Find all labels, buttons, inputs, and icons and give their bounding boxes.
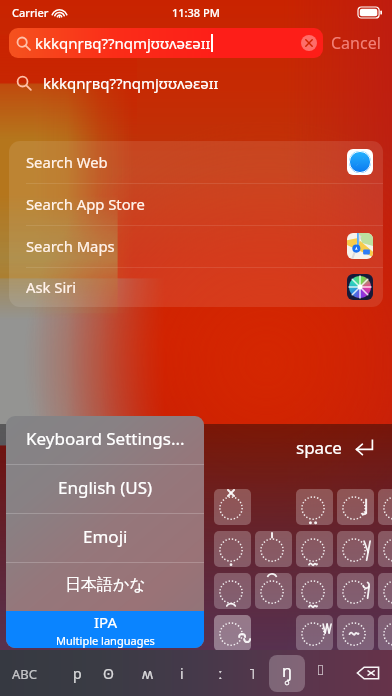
button[interactable]: Diacritic key [378, 615, 392, 651]
staticText: Carrier [12, 5, 49, 20]
button[interactable]: Return [354, 437, 374, 457]
staticText: Ask Siri [26, 277, 77, 297]
staticText: ŋ [282, 660, 292, 682]
staticText: ˥ [249, 664, 255, 683]
button[interactable]: ˥ [246, 661, 258, 686]
button[interactable]: Diacritic key [337, 531, 374, 567]
button[interactable]: Diacritic key [296, 573, 333, 609]
staticText: kkkqnɼвq??nqmјʊʊʌəɛəɪɪ [43, 73, 219, 93]
staticText: Keyboard Settings... [26, 427, 185, 450]
button[interactable]: Emoji [6, 514, 204, 562]
button[interactable]: Diacritic key [255, 531, 292, 567]
button[interactable]: ⌷ [313, 661, 328, 681]
staticText: i [180, 664, 184, 683]
staticText: Search Maps [26, 236, 115, 256]
button[interactable]: Diacritic key [337, 489, 374, 525]
button[interactable]: p [70, 661, 85, 686]
button[interactable]: Diacritic key [378, 531, 392, 567]
button[interactable]: IPA [6, 611, 204, 648]
button[interactable]: Cancel [328, 32, 384, 54]
button[interactable]: space [294, 436, 344, 459]
button[interactable]: ː [215, 661, 226, 686]
button[interactable]: kkkqnɼвq??nqmјʊʊʌəɛəɪɪ [9, 28, 323, 58]
button[interactable]: ŋ [269, 655, 305, 692]
button[interactable]: Diacritic key [255, 573, 292, 609]
button[interactable]: Diacritic key [214, 573, 251, 609]
button[interactable]: Diacritic key [296, 615, 333, 651]
staticText: ABC [12, 665, 37, 683]
button[interactable]: Search App Store [9, 183, 383, 225]
button[interactable]: ʘ [100, 661, 117, 686]
staticText: p [73, 664, 82, 683]
button[interactable]: Ask Siri [9, 267, 383, 307]
button[interactable]: Diacritic key [214, 615, 251, 651]
button[interactable]: Diacritic key [337, 573, 374, 609]
staticText: ⌷ [316, 664, 325, 678]
staticText: 11:38 PM [172, 5, 220, 20]
staticText: ʘ [103, 664, 114, 683]
button[interactable]: Diacritic key [296, 531, 333, 567]
staticText: 日本語かな [65, 575, 146, 595]
button[interactable]: i [177, 661, 187, 686]
button[interactable]: kkkqnɼвq??nqmјʊʊʌəɛəɪɪ [0, 66, 392, 100]
staticText: kkkqnɼвq??nqmјʊʊʌəɛəɪɪ [35, 33, 211, 53]
button[interactable]: 日本語かな [6, 563, 204, 611]
button[interactable]: Diacritic key [378, 489, 392, 525]
staticText: IPA [94, 612, 117, 632]
staticText: Search Web [26, 152, 108, 172]
staticText: Emoji [83, 525, 128, 548]
staticText: Cancel [331, 32, 381, 54]
staticText: Search App Store [26, 194, 145, 214]
button[interactable]: Search Web [9, 141, 383, 183]
staticText: ʍ [142, 664, 154, 683]
button[interactable]: Diacritic key [214, 489, 251, 525]
button[interactable]: Clear text [301, 35, 317, 51]
staticText: space [296, 436, 342, 459]
button[interactable]: English (US) [6, 465, 204, 513]
button[interactable]: Search Maps [9, 225, 383, 267]
staticText: English (US) [58, 476, 153, 499]
button[interactable]: ABC [8, 661, 41, 687]
button[interactable]: Diacritic key [214, 531, 251, 567]
staticText: ː [218, 664, 223, 683]
button[interactable]: Keyboard Settings... [6, 416, 204, 464]
button[interactable]: Delete [356, 661, 380, 685]
staticText: Multiple languages [56, 633, 155, 648]
button[interactable]: ʍ [139, 661, 157, 686]
button[interactable]: Diacritic key [337, 615, 374, 651]
button[interactable]: Diacritic key [378, 573, 392, 609]
button[interactable]: Diacritic key [296, 489, 333, 525]
